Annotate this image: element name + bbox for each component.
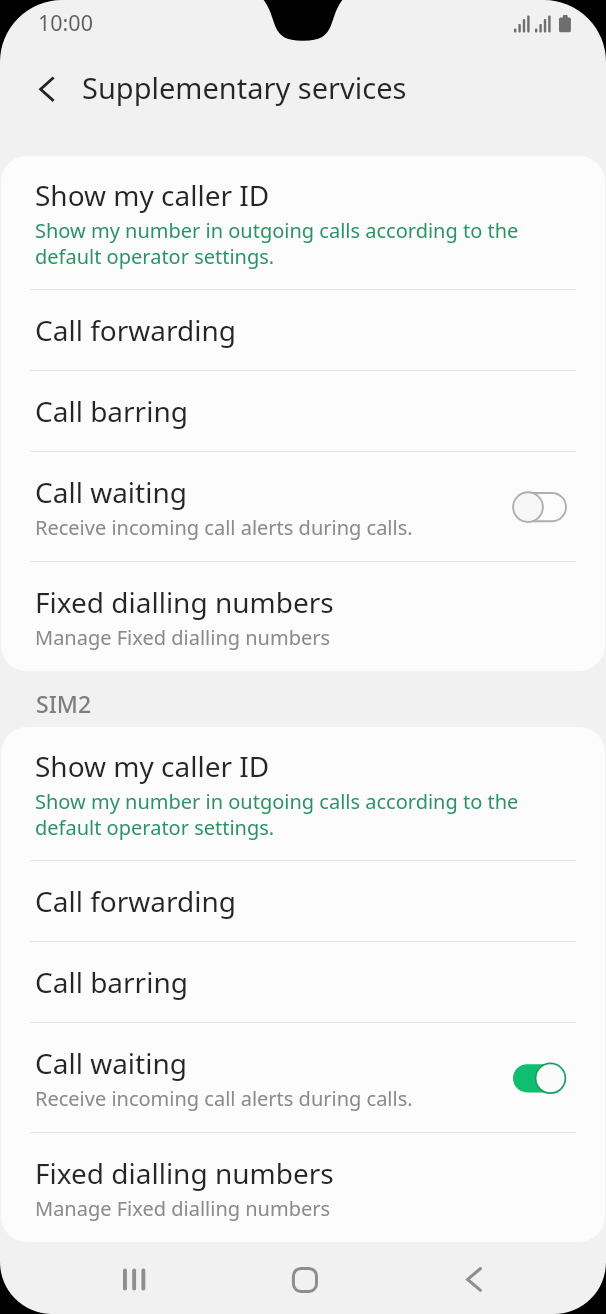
staticText: SIM2 xyxy=(36,688,92,719)
button[interactable]: Call waiting on xyxy=(512,1061,569,1095)
staticText: Call forwarding xyxy=(35,882,236,920)
button[interactable]: Home xyxy=(264,1255,345,1304)
staticText: Show my caller ID xyxy=(35,176,270,214)
staticText: Fixed dialling numbers xyxy=(35,583,334,621)
staticText: Fixed dialling numbers xyxy=(35,1154,334,1192)
staticText: Show my number in outgoing calls accordi… xyxy=(35,788,519,841)
staticText: Receive incoming call alerts during call… xyxy=(35,1085,413,1112)
staticText: Call barring xyxy=(35,963,188,1001)
button[interactable]: Fixed dialling numbers xyxy=(1,1133,605,1242)
staticText: Show my caller ID xyxy=(35,747,270,785)
button[interactable]: Call barring xyxy=(1,371,605,451)
staticText: Supplementary services xyxy=(82,68,407,107)
staticText: Call waiting xyxy=(35,473,187,511)
button[interactable]: Navigate up xyxy=(0,57,96,125)
button[interactable]: Call waiting xyxy=(1,452,605,561)
staticText: 10:00 xyxy=(38,8,93,37)
staticText: Manage Fixed dialling numbers xyxy=(35,624,331,651)
staticText: Call waiting xyxy=(35,1044,187,1082)
button[interactable]: Recent apps xyxy=(94,1255,175,1304)
button[interactable]: Call waiting off xyxy=(512,490,569,524)
staticText: Call barring xyxy=(35,392,188,430)
staticText: Call forwarding xyxy=(35,311,236,349)
staticText: Receive incoming call alerts during call… xyxy=(35,514,413,541)
staticText: Show my number in outgoing calls accordi… xyxy=(35,217,519,270)
button[interactable]: Call forwarding xyxy=(1,861,605,941)
staticText: Manage Fixed dialling numbers xyxy=(35,1195,331,1222)
button[interactable]: Call barring xyxy=(1,942,605,1022)
button[interactable]: Show my caller ID xyxy=(1,156,605,289)
button[interactable]: Show my caller ID xyxy=(1,727,605,860)
button[interactable]: Back xyxy=(433,1255,514,1304)
button[interactable]: Call waiting xyxy=(1,1023,605,1132)
button[interactable]: Fixed dialling numbers xyxy=(1,562,605,671)
button[interactable]: Call forwarding xyxy=(1,290,605,370)
